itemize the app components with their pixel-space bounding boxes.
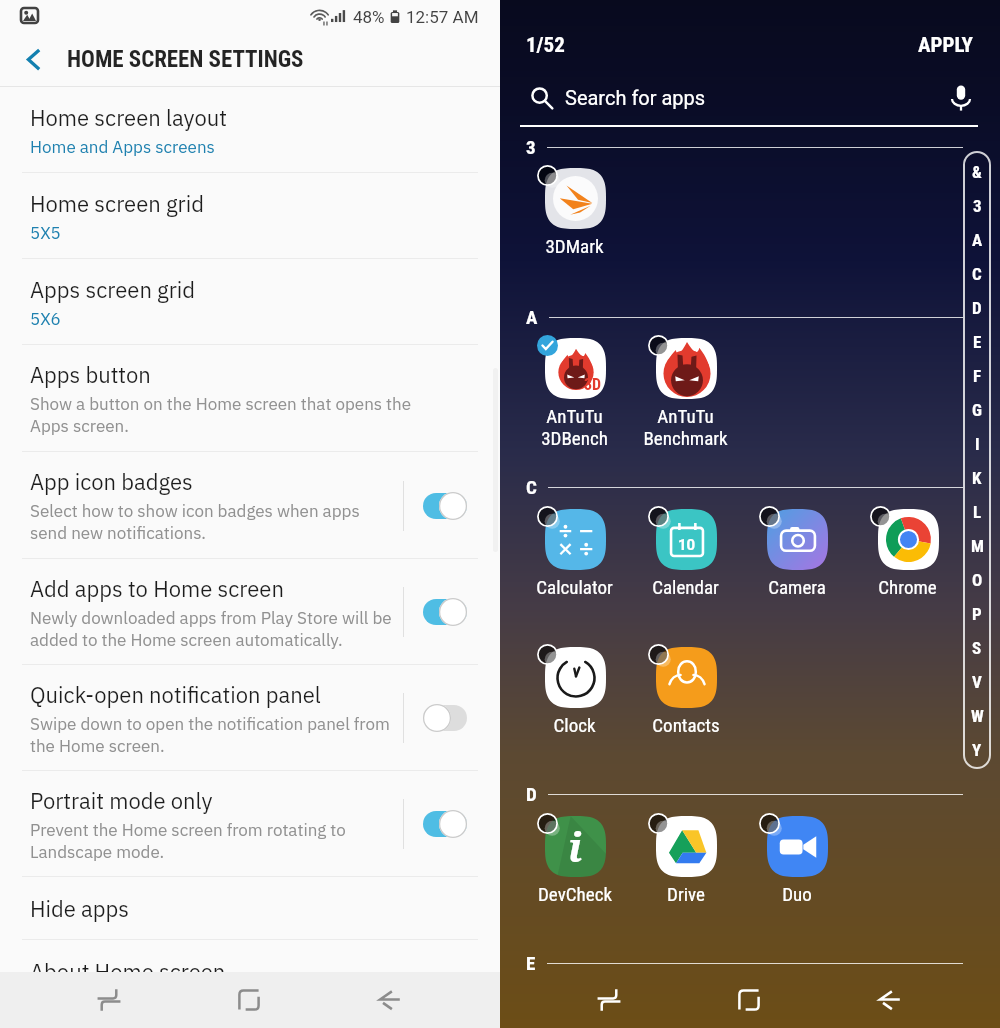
staticText: Newly downloaded apps from Play Store wi…: [30, 607, 392, 651]
button[interactable]: Recent apps: [74, 972, 144, 1028]
button[interactable]: AnTuTu Benchmark: [630, 337, 741, 450]
staticText: D: [972, 298, 982, 318]
button[interactable]: 3D: [519, 337, 630, 450]
button[interactable]: i: [519, 815, 630, 905]
button[interactable]: App icon badges: [0, 452, 500, 559]
staticText: &: [972, 162, 982, 182]
staticText: Swipe down to open the notification pane…: [30, 713, 390, 757]
button[interactable]: Apps screen grid: [0, 259, 500, 345]
staticText: HOME SCREEN SETTINGS: [67, 46, 304, 73]
staticText: O: [972, 570, 983, 590]
staticText: Calendar: [652, 576, 719, 598]
button[interactable]: Navigate up: [0, 36, 69, 86]
staticText: M: [971, 536, 984, 556]
button[interactable]: Hide apps: [0, 877, 500, 940]
staticText: A: [972, 230, 983, 250]
staticText: F: [973, 366, 982, 386]
button[interactable]: Search for apps: [530, 78, 976, 118]
staticText: Y: [972, 740, 982, 760]
staticText: i: [568, 819, 583, 873]
staticText: 3: [973, 196, 982, 216]
button[interactable]: 10: [630, 508, 741, 598]
button[interactable]: Recent apps: [574, 972, 644, 1028]
staticText: Home screen grid: [30, 189, 204, 218]
staticText: E: [526, 952, 536, 974]
button[interactable]: Home screen grid: [0, 173, 500, 259]
button[interactable]: 3DMark: [519, 167, 630, 257]
staticText: 12:57 AM: [406, 7, 479, 27]
staticText: 3D: [584, 375, 602, 394]
button[interactable]: Switch on: [423, 597, 469, 627]
staticText: About Home screen: [30, 957, 226, 986]
staticText: AnTuTu Benchmark: [643, 405, 728, 450]
staticText: 3: [526, 136, 536, 158]
button[interactable]: APPLY: [915, 30, 977, 60]
staticText: 48%: [353, 7, 385, 27]
button[interactable]: About Home screen: [0, 940, 500, 1003]
staticText: Drive: [667, 883, 705, 905]
button[interactable]: Duo: [741, 815, 852, 905]
staticText: AnTuTu 3DBench: [541, 405, 608, 450]
staticText: 1/52: [526, 33, 565, 58]
staticText: Home screen layout: [30, 103, 227, 132]
staticText: Search for apps: [565, 86, 706, 109]
staticText: Apps screen grid: [30, 275, 196, 304]
button[interactable]: Apps button: [0, 345, 500, 452]
staticText: Add apps to Home screen: [30, 574, 284, 603]
staticText: Clock: [553, 714, 596, 736]
staticText: Contacts: [652, 714, 720, 736]
staticText: App icon badges: [30, 467, 193, 496]
staticText: D: [526, 783, 537, 805]
button[interactable]: Drive: [630, 815, 741, 905]
staticText: Hide apps: [30, 894, 130, 923]
staticText: APPLY: [918, 33, 974, 57]
staticText: Prevent the Home screen from rotating to…: [30, 819, 346, 863]
button[interactable]: Contacts: [630, 646, 741, 736]
staticText: Chrome: [878, 576, 937, 598]
staticText: 10: [678, 536, 696, 554]
staticText: C: [526, 476, 537, 498]
button[interactable]: Back: [354, 972, 424, 1028]
staticText: Home and Apps screens: [30, 136, 215, 158]
staticText: C: [972, 264, 982, 284]
button[interactable]: Portrait mode only: [0, 771, 500, 877]
button[interactable]: Switch on: [423, 809, 469, 839]
staticText: Quick-open notification panel: [30, 680, 321, 709]
button[interactable]: Chrome: [852, 508, 963, 598]
staticText: I: [975, 434, 980, 454]
button[interactable]: Voice search: [946, 83, 976, 113]
button[interactable]: Clock: [519, 646, 630, 736]
staticText: S: [972, 638, 982, 658]
staticText: P: [972, 604, 982, 624]
staticText: L: [973, 502, 982, 522]
button[interactable]: Alphabet index: [963, 151, 991, 769]
staticText: Calculator: [536, 576, 613, 598]
staticText: Portrait mode only: [30, 786, 213, 815]
staticText: Select how to show icon badges when apps…: [30, 500, 360, 544]
staticText: A: [526, 306, 538, 328]
staticText: Camera: [768, 576, 826, 598]
staticText: Show a button on the Home screen that op…: [30, 393, 412, 437]
button[interactable]: Home screen layout: [0, 87, 500, 173]
button[interactable]: Quick-open notification panel: [0, 665, 500, 771]
staticText: 5X5: [30, 222, 61, 244]
button[interactable]: Camera: [741, 508, 852, 598]
button[interactable]: Calculator: [519, 508, 630, 598]
button[interactable]: Home: [714, 972, 784, 1028]
button[interactable]: Switch off: [423, 703, 469, 733]
button[interactable]: Home: [214, 972, 284, 1028]
staticText: DevCheck: [538, 883, 612, 905]
button[interactable]: Add apps to Home screen: [0, 559, 500, 665]
staticText: 5X6: [30, 308, 61, 330]
staticText: G: [972, 400, 982, 420]
staticText: Apps button: [30, 360, 151, 389]
staticText: Duo: [782, 883, 812, 905]
staticText: E: [973, 332, 982, 352]
staticText: K: [972, 468, 982, 488]
button[interactable]: Switch on: [423, 491, 469, 521]
staticText: 3DMark: [545, 235, 604, 257]
staticText: W: [971, 706, 984, 726]
button[interactable]: Back: [854, 972, 924, 1028]
staticText: V: [972, 672, 982, 692]
